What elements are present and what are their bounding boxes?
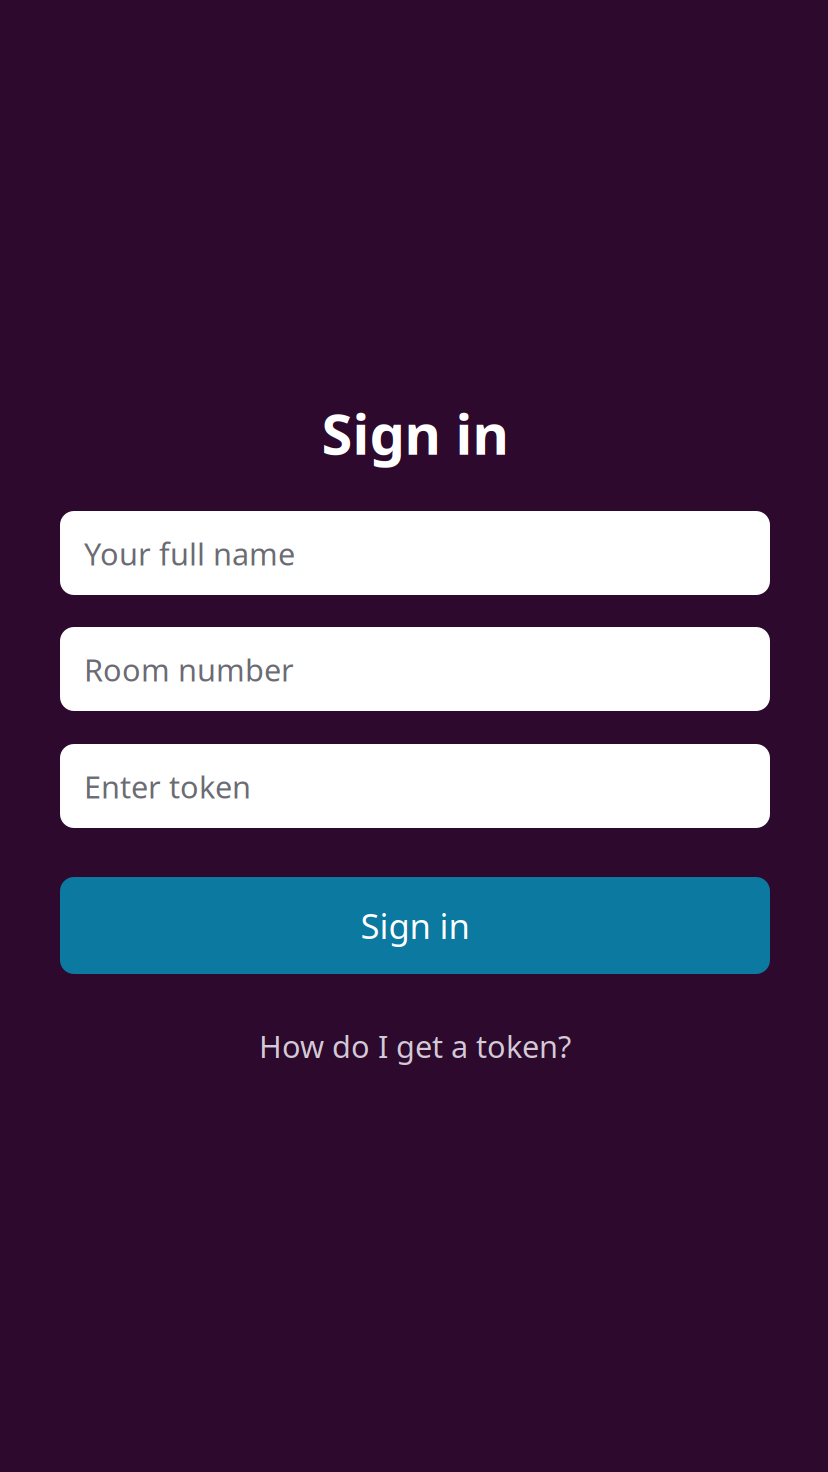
button[interactable]: Room number bbox=[60, 627, 770, 711]
button[interactable]: Your full name bbox=[60, 511, 770, 595]
staticText: Sign in bbox=[360, 902, 469, 948]
button[interactable]: Sign in bbox=[60, 877, 770, 974]
button[interactable]: How do I get a token? bbox=[259, 1029, 571, 1063]
staticText: Enter token bbox=[84, 766, 251, 807]
staticText: Room number bbox=[84, 649, 294, 690]
staticText: How do I get a token? bbox=[259, 1026, 571, 1066]
staticText: Your full name bbox=[84, 533, 295, 574]
staticText: Sign in bbox=[321, 396, 508, 470]
button[interactable]: Enter token bbox=[60, 744, 770, 828]
